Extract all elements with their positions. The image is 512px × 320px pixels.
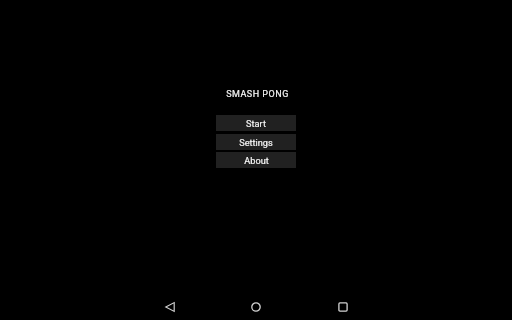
staticText: Settings [239,137,273,148]
staticText: About [244,155,269,166]
staticText: Start [246,118,266,129]
button[interactable]: Home [234,293,278,320]
button[interactable]: Start [216,115,296,131]
button[interactable]: Back [148,293,192,320]
button[interactable]: About [216,152,296,168]
staticText: SMASH PONG [226,89,289,100]
button[interactable]: Recent apps [321,293,365,320]
button[interactable]: Settings [216,134,296,150]
